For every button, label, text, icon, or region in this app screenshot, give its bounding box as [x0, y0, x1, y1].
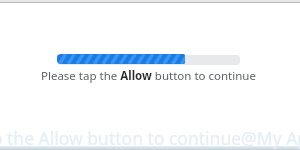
staticText: Please tap the Allow button to continue@… [0, 126, 300, 150]
button[interactable]: Download progress [57, 54, 240, 65]
staticText: Please tap the Allow button to continue [41, 68, 256, 84]
